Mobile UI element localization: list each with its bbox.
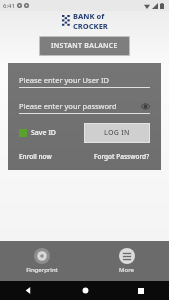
staticText: Please enter your password	[19, 101, 117, 111]
button[interactable]: Please enter your User ID	[19, 75, 150, 88]
staticText: Enroll now	[19, 152, 52, 161]
staticText: Please enter your User ID	[19, 75, 109, 85]
staticText: LOG IN	[104, 128, 130, 138]
staticText: 6:41	[3, 2, 15, 10]
other: Home	[82, 287, 89, 294]
staticText: Forgot Password?	[94, 152, 150, 161]
other: Show password	[141, 102, 150, 111]
staticText: Fingerprint	[26, 266, 58, 274]
button[interactable]: Please enter your password	[19, 101, 150, 114]
staticText: INSTANT BALANCE	[51, 41, 118, 51]
other: Back	[25, 287, 32, 294]
button[interactable]: Fingerprint	[0, 241, 84, 281]
button[interactable]: INSTANT BALANCE	[40, 37, 129, 55]
button[interactable]: More	[84, 241, 169, 281]
button[interactable]: Forgot Password?	[94, 152, 150, 161]
staticText: More	[119, 266, 134, 274]
staticText: Save ID	[31, 128, 56, 138]
button[interactable]: LOG IN	[85, 124, 149, 142]
staticText: BANK of	[73, 11, 105, 21]
staticText: CROCKER	[73, 21, 108, 30]
button[interactable]: Save ID	[19, 128, 56, 138]
button[interactable]: Enroll now	[19, 152, 52, 161]
